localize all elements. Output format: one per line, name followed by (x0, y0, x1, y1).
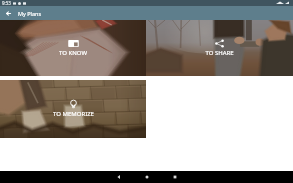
button[interactable]: TO SHARE (146, 20, 293, 76)
staticText: TO SHARE (205, 49, 234, 57)
button[interactable]: Back (0, 6, 16, 20)
button[interactable]: Back (105, 171, 133, 183)
button[interactable]: TO KNOW (0, 20, 146, 76)
button[interactable]: TO MEMORIZE (0, 80, 146, 138)
staticText: TO KNOW (59, 49, 87, 57)
staticText: 9:53 (2, 0, 11, 6)
staticText: TO MEMORIZE (53, 110, 94, 118)
button[interactable]: Home (133, 171, 161, 183)
staticText: My Plans (18, 10, 42, 17)
button[interactable]: Recents (161, 171, 189, 183)
